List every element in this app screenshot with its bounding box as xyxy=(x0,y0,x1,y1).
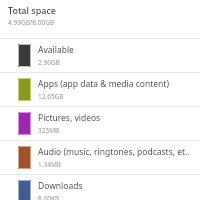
button[interactable]: Downloads xyxy=(0,175,200,200)
staticText: Downloads xyxy=(38,180,83,192)
staticText: 1.34MB xyxy=(38,160,62,169)
staticText: Available xyxy=(38,44,74,56)
staticText: 4.99GB/8.00GB xyxy=(8,18,55,27)
button[interactable]: Available xyxy=(0,39,200,72)
staticText: 8.00KB xyxy=(38,194,60,200)
staticText: Pictures, videos xyxy=(38,112,101,124)
button[interactable]: Pictures, videos xyxy=(0,107,200,140)
staticText: Total space xyxy=(8,4,56,16)
button[interactable]: Apps (app data & media content) xyxy=(0,73,200,106)
staticText: Apps (app data & media content) xyxy=(38,78,169,90)
staticText: 12.65GB xyxy=(38,92,64,101)
staticText: 2.90GB xyxy=(38,58,60,67)
staticText: 325MB xyxy=(38,126,60,135)
staticText: Audio (music, ringtones, podcasts, et.. xyxy=(38,146,190,158)
button[interactable]: Audio (music, ringtones, podcasts, et.. xyxy=(0,141,200,174)
